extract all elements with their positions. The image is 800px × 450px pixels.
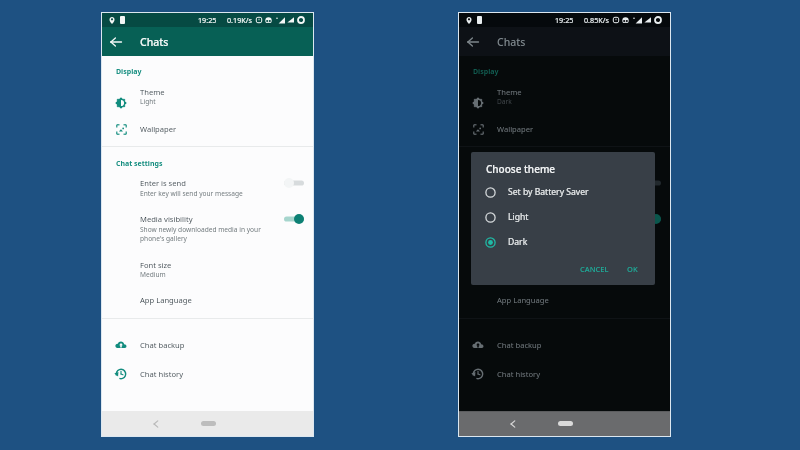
staticText: Chat backup: [140, 340, 185, 350]
button[interactable]: Enter is send: [102, 169, 313, 203]
staticText: 19:25: [555, 15, 574, 25]
button[interactable]: Media visibility: [459, 205, 670, 245]
staticText: Media visibility: [497, 214, 550, 224]
staticText: Theme: [140, 87, 165, 97]
button[interactable]: Chat history: [459, 362, 670, 386]
button[interactable]: Back: [105, 27, 126, 56]
staticText: Chats: [140, 35, 169, 49]
button[interactable]: App Language: [102, 288, 313, 312]
staticText: OK: [627, 264, 638, 274]
button[interactable]: Theme: [459, 85, 670, 121]
staticText: Enter key will send your message: [497, 189, 600, 198]
button[interactable]: Chat backup: [102, 333, 313, 357]
button[interactable]: Chat history: [102, 362, 313, 386]
staticText: Show newly downloaded media in your phon…: [140, 225, 261, 243]
staticText: Wallpaper: [140, 124, 177, 134]
staticText: Display: [473, 67, 499, 77]
staticText: Chat settings: [116, 159, 163, 169]
staticText: Enter is send: [140, 178, 186, 188]
button[interactable]: Set by Battery Saver: [471, 182, 655, 202]
staticText: Set by Battery Saver: [508, 186, 589, 198]
staticText: Theme: [497, 87, 522, 97]
staticText: Wallpaper: [497, 124, 534, 134]
staticText: Chat history: [140, 369, 184, 379]
button[interactable]: Font size: [459, 258, 670, 294]
staticText: App Language: [140, 295, 192, 305]
button[interactable]: Dark: [471, 232, 655, 252]
button[interactable]: Light: [471, 207, 655, 227]
button[interactable]: Back: [503, 411, 523, 436]
staticText: Medium: [140, 270, 166, 279]
button[interactable]: Theme: [102, 85, 313, 121]
button[interactable]: Media visibility: [102, 205, 313, 245]
button[interactable]: Wallpaper: [459, 117, 670, 141]
button[interactable]: Home: [190, 411, 226, 436]
staticText: Light: [140, 97, 156, 106]
button[interactable]: OK: [622, 260, 643, 278]
staticText: Dark: [508, 236, 528, 248]
staticText: Light: [508, 211, 529, 223]
button[interactable]: Chat backup: [459, 333, 670, 357]
staticText: Display: [116, 67, 142, 77]
button[interactable]: Home: [547, 411, 583, 436]
staticText: Choose theme: [486, 162, 556, 176]
staticText: Font size: [140, 260, 172, 270]
button[interactable]: Font size: [102, 258, 313, 294]
staticText: Chat history: [497, 369, 541, 379]
button[interactable]: Back: [462, 27, 483, 56]
staticText: Dark: [497, 97, 512, 106]
staticText: Chat backup: [497, 340, 542, 350]
button[interactable]: CANCEL: [575, 260, 614, 278]
staticText: 0.85K/s: [584, 15, 609, 25]
button[interactable]: Back: [146, 411, 166, 436]
button[interactable]: App Language: [459, 288, 670, 312]
staticText: Chats: [497, 35, 526, 49]
staticText: 0.19K/s: [227, 15, 252, 25]
staticText: Show newly downloaded media in your phon…: [497, 225, 618, 243]
button[interactable]: Wallpaper: [102, 117, 313, 141]
staticText: CANCEL: [580, 264, 609, 274]
staticText: Chat settings: [473, 159, 520, 169]
button[interactable]: Enter is send: [459, 169, 670, 203]
staticText: 19:25: [198, 15, 217, 25]
staticText: App Language: [497, 295, 549, 305]
staticText: Enter key will send your message: [140, 189, 243, 198]
staticText: Media visibility: [140, 214, 193, 224]
